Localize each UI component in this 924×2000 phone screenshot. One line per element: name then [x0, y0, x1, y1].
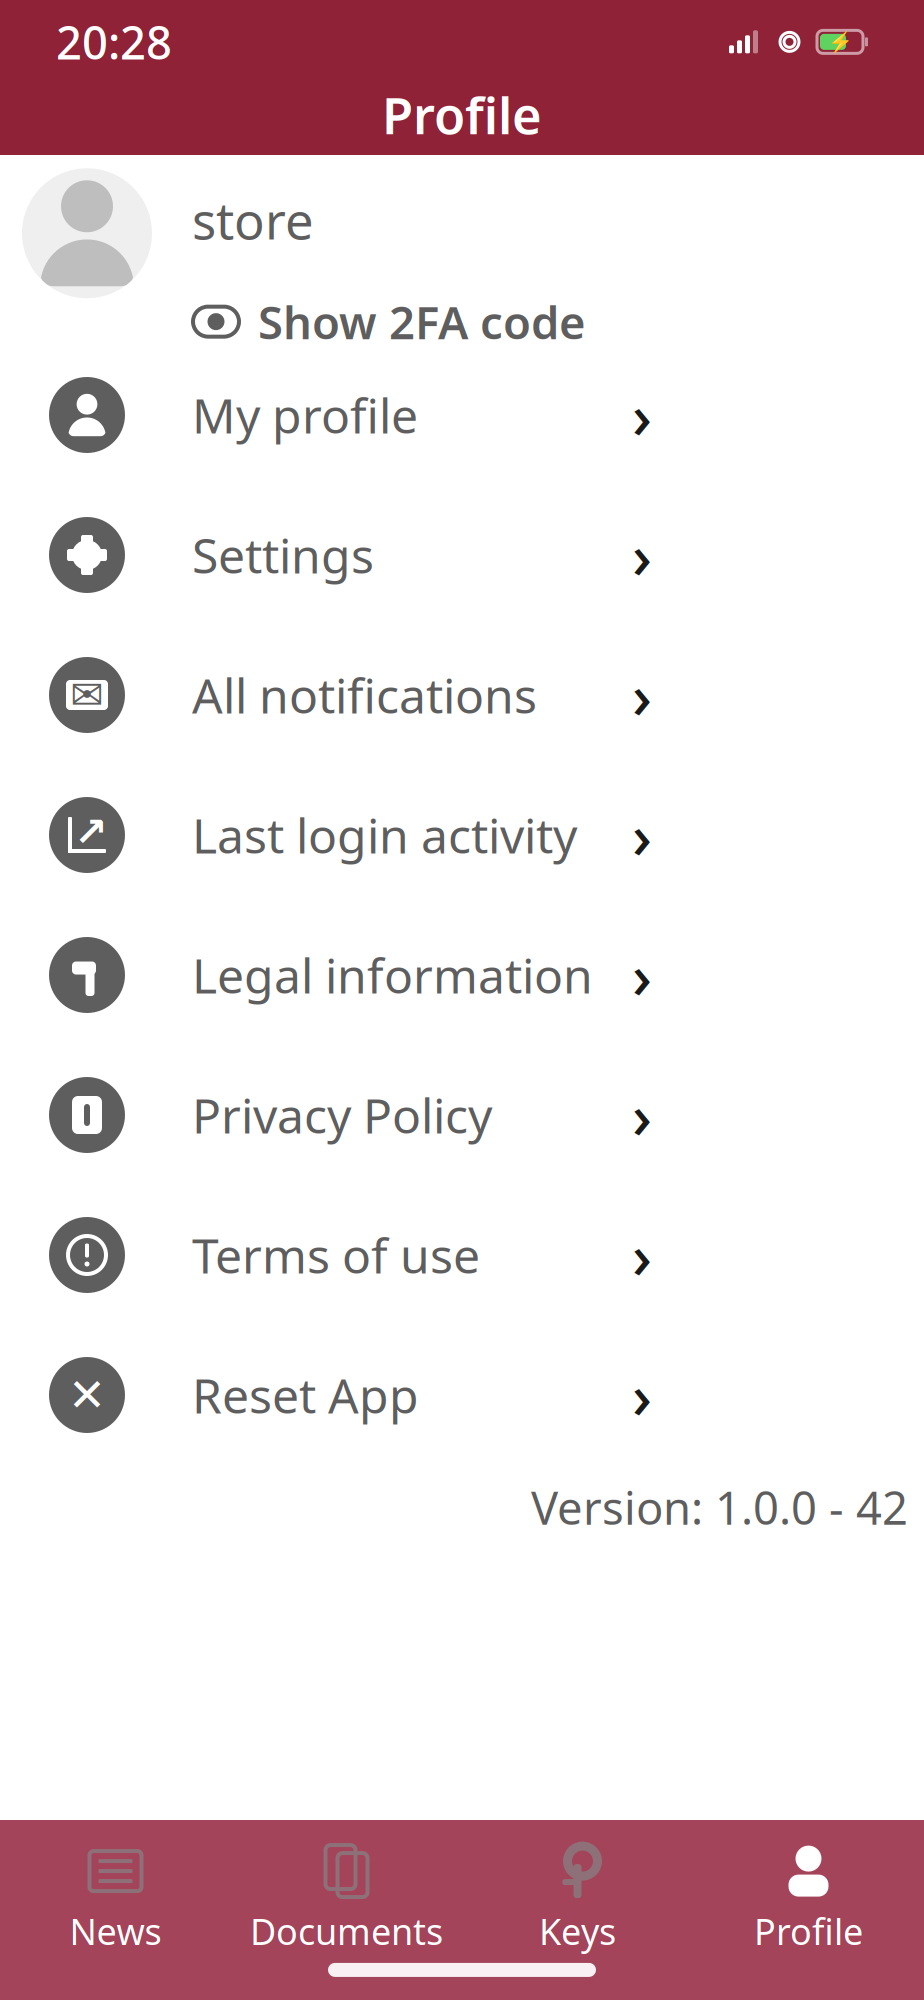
button[interactable]: My profile	[0, 345, 924, 485]
staticText: ↗	[74, 809, 108, 855]
staticText: ✉	[70, 672, 104, 718]
button[interactable]: Privacy Policy	[0, 1045, 924, 1185]
staticText: ›	[632, 374, 652, 456]
button[interactable]: News	[0, 1845, 231, 1955]
staticText: Privacy Policy	[192, 1083, 492, 1147]
button[interactable]: ✉	[0, 625, 924, 765]
button[interactable]: Profile	[693, 1845, 924, 1955]
staticText: ›	[632, 1214, 652, 1296]
button[interactable]: ✕	[0, 1325, 924, 1465]
staticText: Profile	[754, 1907, 863, 1955]
staticText: Legal information	[192, 943, 593, 1007]
staticText: ⚡	[827, 30, 852, 53]
staticText: 20:28	[56, 12, 172, 72]
staticText: All notifications	[192, 663, 537, 727]
staticText: Last login activity	[192, 803, 577, 867]
staticText: ›	[632, 794, 652, 876]
button[interactable]: Show 2FA code	[192, 291, 586, 352]
staticText: Profile	[382, 81, 542, 148]
button[interactable]: Keys	[462, 1845, 693, 1955]
staticText: Show 2FA code	[258, 291, 586, 352]
staticText: store	[192, 186, 314, 254]
button[interactable]: Documents	[231, 1845, 462, 1955]
staticText: My profile	[192, 383, 418, 447]
staticText: Settings	[192, 523, 374, 587]
button[interactable]: Terms of use	[0, 1185, 924, 1325]
staticText: Terms of use	[192, 1223, 480, 1287]
staticText: ›	[632, 934, 652, 1016]
button[interactable]: Settings	[0, 485, 924, 625]
button[interactable]: Legal information	[0, 905, 924, 1045]
staticText: Reset App	[192, 1363, 419, 1427]
staticText: Documents	[250, 1907, 443, 1955]
staticText: Keys	[539, 1907, 616, 1955]
staticText: ›	[632, 654, 652, 736]
staticText: ›	[632, 514, 652, 596]
staticText: News	[69, 1907, 161, 1955]
button[interactable]: ↗	[0, 765, 924, 905]
staticText: ✕	[68, 1369, 106, 1421]
staticText: ›	[632, 1074, 652, 1156]
staticText: ›	[632, 1354, 652, 1436]
staticText: Version: 1.0.0 - 42	[531, 1477, 908, 1537]
